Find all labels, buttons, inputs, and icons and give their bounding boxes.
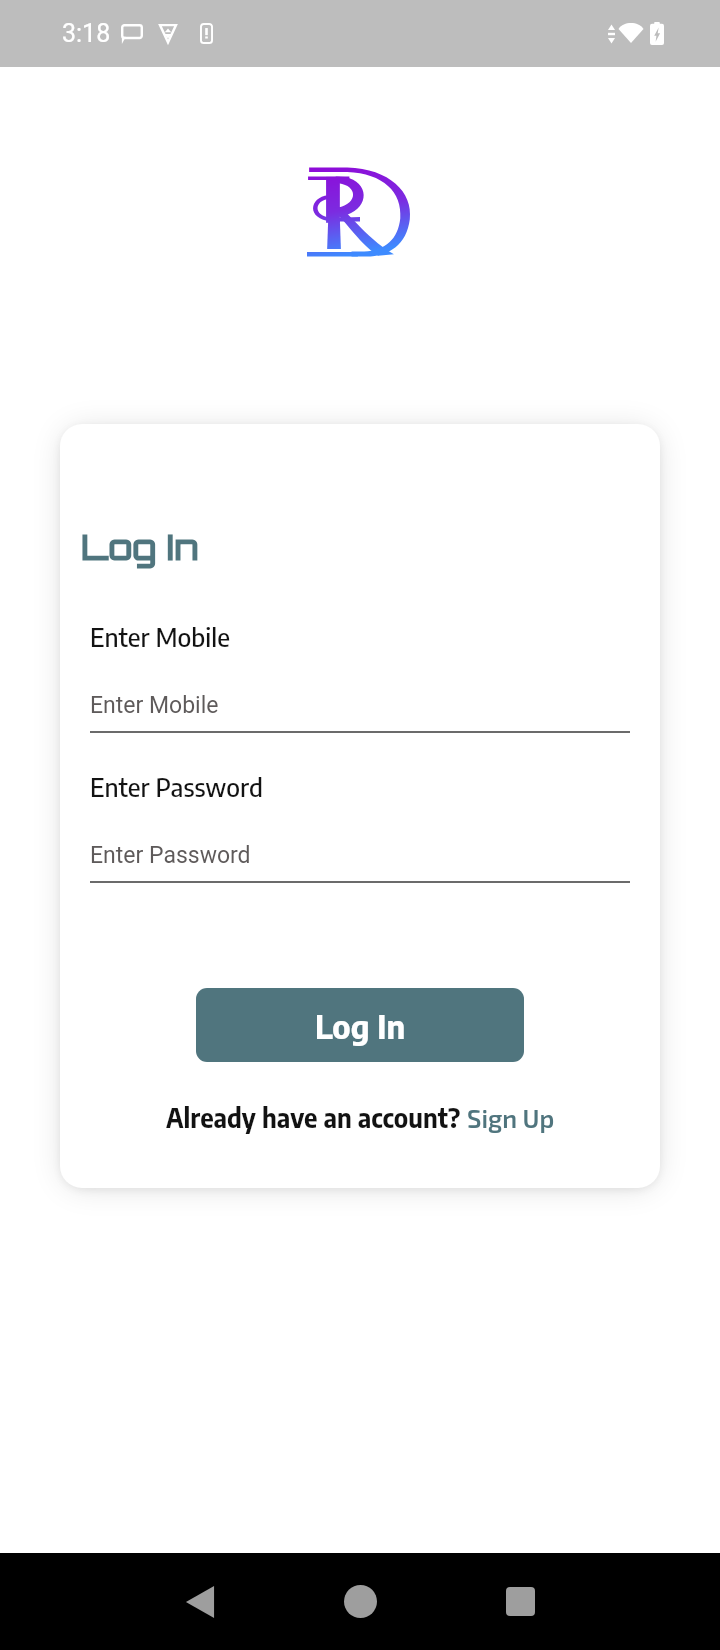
button[interactable]: Recent apps [440,1553,600,1650]
button[interactable]: Sign Up [467,1103,555,1133]
button[interactable]: Log In [196,988,524,1062]
staticText: Enter Mobile [90,620,231,652]
button[interactable]: Enter Password [90,842,630,883]
button[interactable]: Back [120,1553,280,1650]
button[interactable]: Enter Mobile [90,692,630,733]
staticText: Sign Up [467,1103,555,1133]
staticText: Log In [315,1005,406,1046]
staticText: Enter Password [90,770,263,802]
button[interactable]: Home [280,1553,440,1650]
staticText: Enter Password [90,842,251,869]
staticText: 3:18 [62,19,111,48]
staticText: Already have an account? [166,1101,467,1133]
staticText: Log In [81,525,199,569]
staticText: Enter Mobile [90,692,219,719]
